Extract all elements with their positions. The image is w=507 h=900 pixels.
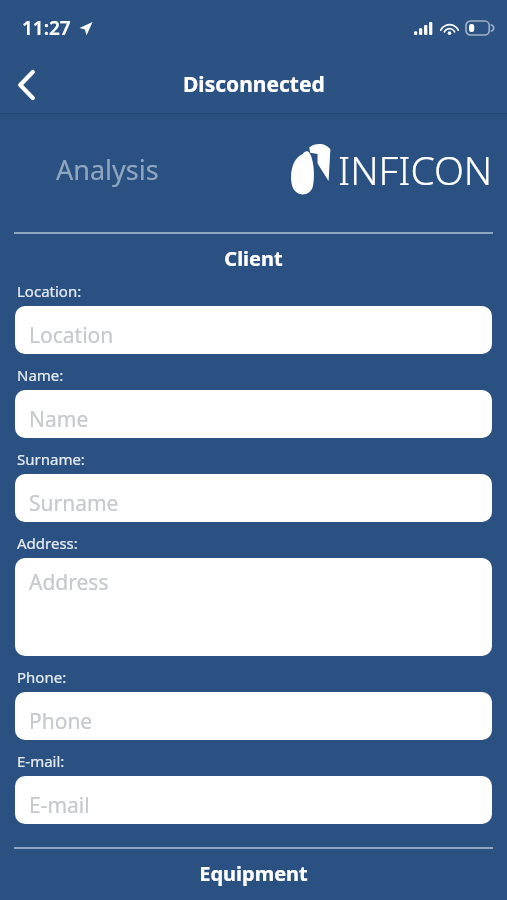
button[interactable]: Name [15, 390, 492, 438]
staticText: Client [0, 245, 507, 272]
button[interactable]: E-mail [15, 776, 492, 824]
staticText: Phone [29, 707, 93, 736]
button[interactable]: Location [15, 306, 492, 354]
staticText: Location: [17, 281, 82, 301]
staticText: Surname [29, 489, 119, 518]
staticText: Analysis [56, 151, 159, 188]
staticText: Location [29, 321, 114, 350]
staticText: Address: [17, 533, 78, 553]
staticText: Disconnected [183, 70, 325, 99]
staticText: Equipment [0, 860, 507, 887]
staticText: Phone: [17, 667, 67, 687]
staticText: E-mail: [17, 751, 65, 771]
staticText: INFICON [338, 143, 493, 196]
staticText: Name [29, 405, 89, 434]
staticText: Address [29, 568, 109, 597]
button[interactable]: Address [15, 558, 492, 656]
staticText: Surname: [17, 449, 85, 469]
button[interactable]: Back [0, 59, 52, 111]
button[interactable]: Surname [15, 474, 492, 522]
staticText: 11:27 [22, 15, 71, 41]
button[interactable]: Phone [15, 692, 492, 740]
staticText: E-mail [29, 791, 90, 820]
staticText: Name: [17, 365, 64, 385]
